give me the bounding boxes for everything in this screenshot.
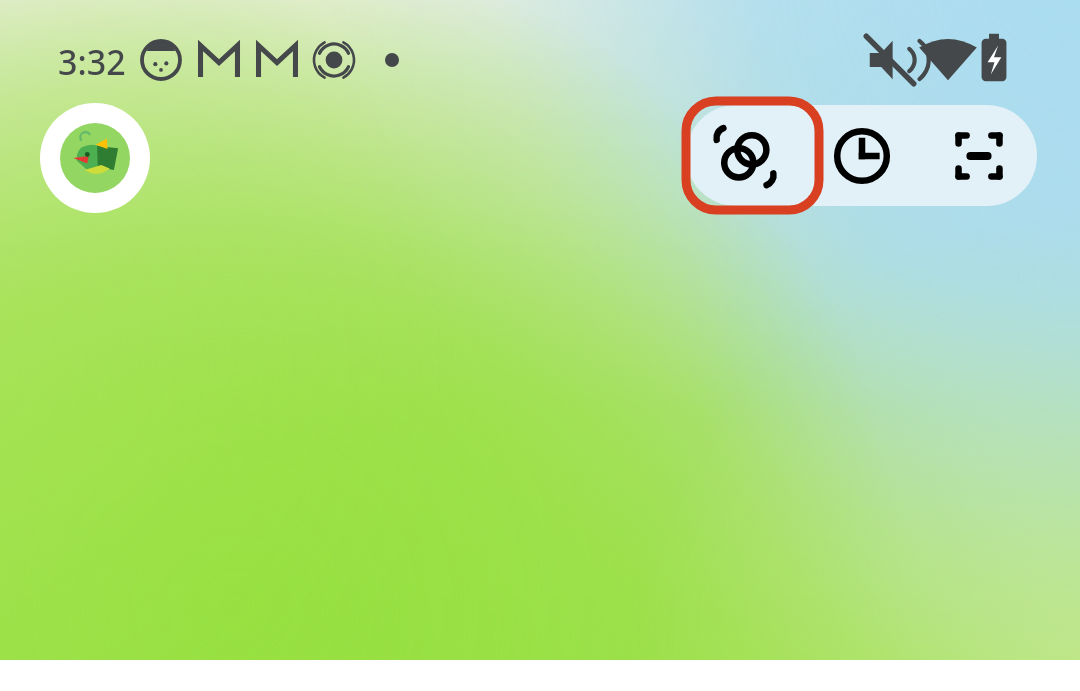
staticText: 3:32 [58, 39, 126, 85]
button[interactable]: App shortcut [40, 103, 150, 213]
button[interactable]: Scan [920, 105, 1037, 206]
button[interactable]: Circle to Search [686, 105, 803, 206]
button[interactable]: Clock [803, 105, 920, 206]
